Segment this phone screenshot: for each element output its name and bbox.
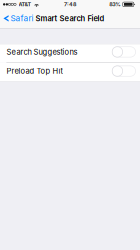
staticText: Smart Search Field <box>35 14 104 23</box>
staticText: AT&T <box>18 1 31 8</box>
button[interactable]: Search Suggestions <box>0 44 140 62</box>
staticText: Preload Top Hit <box>6 66 62 76</box>
staticText: Safari <box>11 13 34 23</box>
staticText: 83% <box>109 1 120 8</box>
staticText: Search Suggestions <box>6 47 77 56</box>
button[interactable]: Safari <box>0 9 37 28</box>
staticText: 7:48 <box>64 1 76 8</box>
button[interactable]: Preload Top Hit <box>0 63 140 82</box>
